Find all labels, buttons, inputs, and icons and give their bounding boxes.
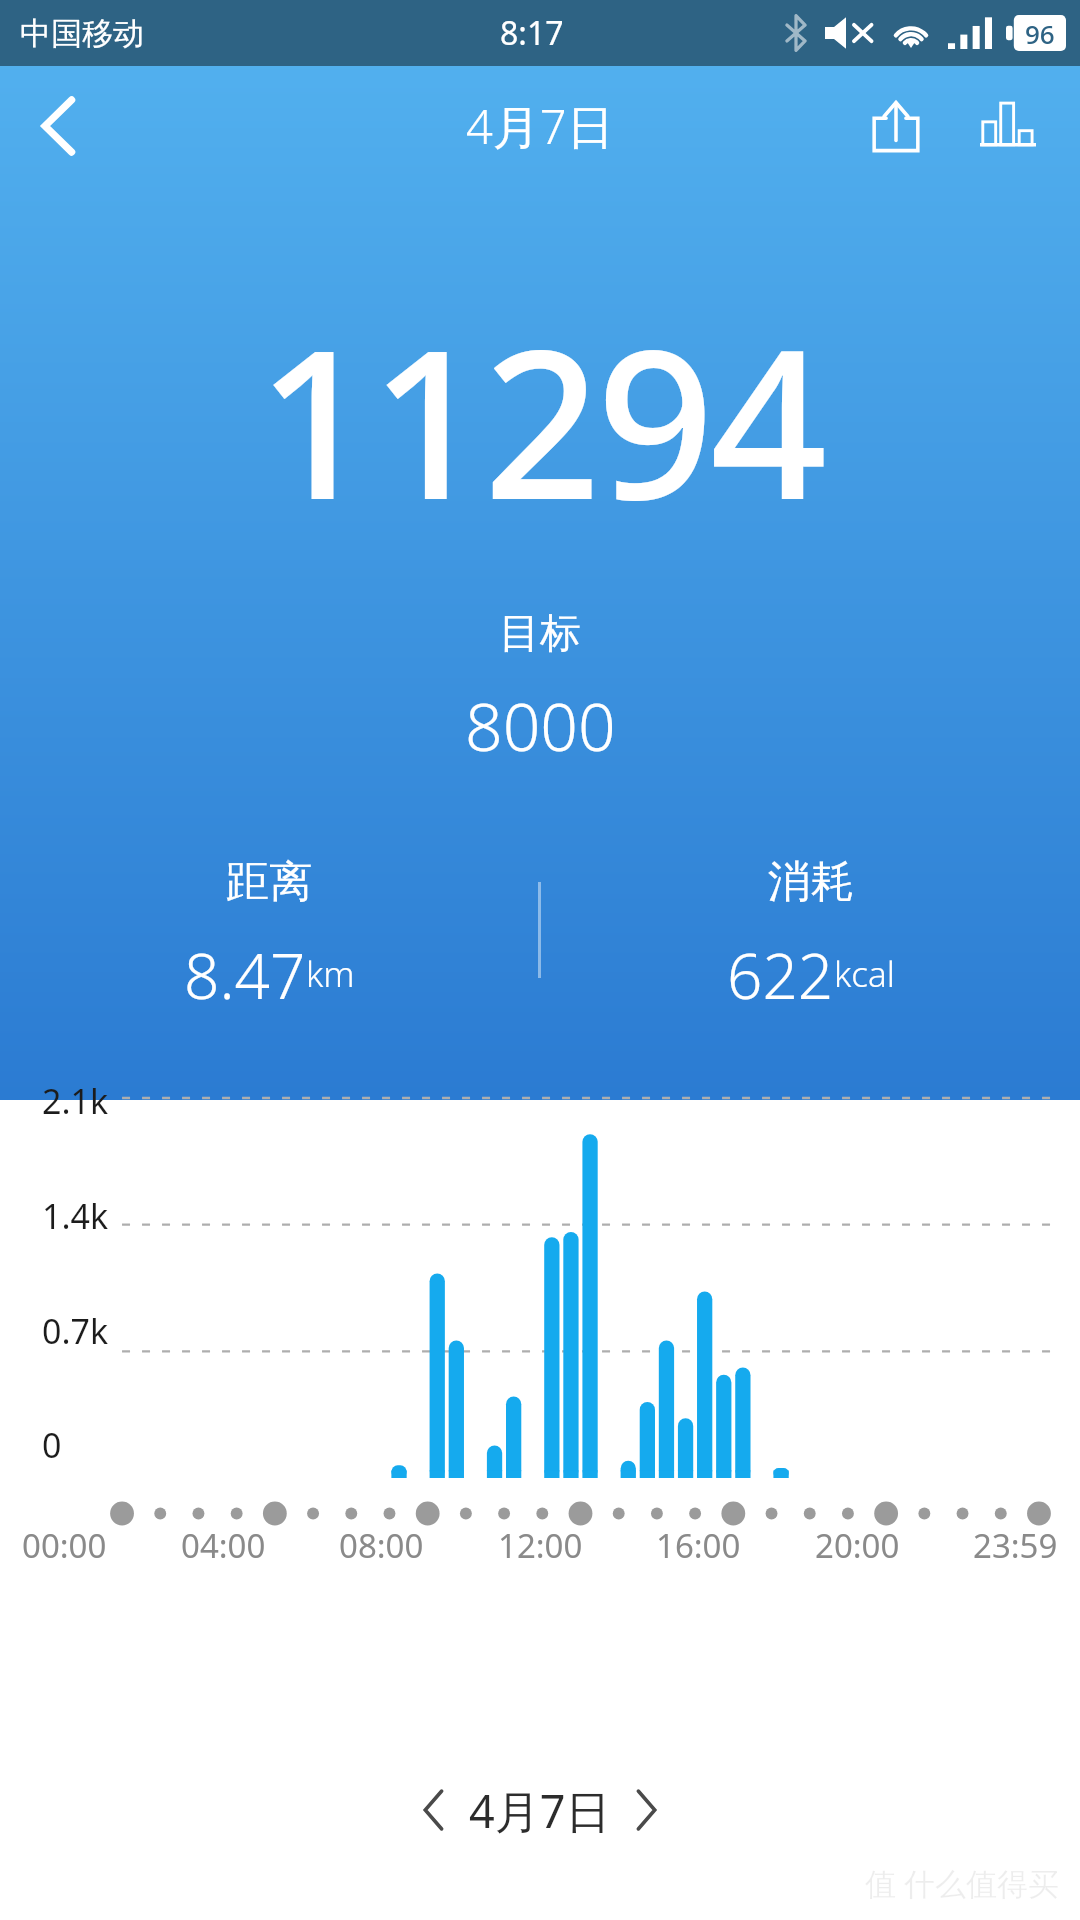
staticText: 值 什么值得买	[865, 1862, 1060, 1904]
staticText: 4月7日	[466, 94, 614, 158]
staticText: 08:00	[339, 1523, 424, 1568]
staticText: 8:17	[500, 11, 564, 55]
button[interactable]: Previous day	[399, 1775, 469, 1845]
staticText: 消耗	[768, 855, 854, 909]
staticText: 8000	[465, 680, 616, 770]
staticText: 622	[727, 933, 834, 1005]
button[interactable]: 4月7日	[469, 1780, 611, 1841]
staticText: 2.1k	[42, 1078, 109, 1124]
button[interactable]: Back	[12, 80, 104, 172]
staticText: 20:00	[815, 1523, 900, 1568]
staticText: 距离	[226, 855, 312, 909]
staticText: km	[306, 950, 355, 998]
staticText: 04:00	[181, 1523, 266, 1568]
staticText: 23:59	[973, 1523, 1058, 1568]
staticText: 目标	[499, 608, 581, 660]
staticText: 12:00	[498, 1523, 583, 1568]
button[interactable]: Statistics	[962, 80, 1054, 172]
staticText: 0.7k	[42, 1308, 109, 1354]
staticText: 1.4k	[42, 1193, 109, 1239]
staticText: 16:00	[656, 1523, 741, 1568]
staticText: 11294	[257, 280, 824, 559]
staticText: 中国移动	[20, 14, 144, 53]
staticText: 00:00	[22, 1523, 107, 1568]
button[interactable]: Next day	[611, 1775, 681, 1845]
staticText: 96	[1025, 16, 1055, 51]
staticText: 8.47	[184, 933, 306, 1005]
staticText: kcal	[834, 950, 895, 998]
staticText: 0	[42, 1422, 62, 1468]
button[interactable]: Share	[850, 80, 942, 172]
